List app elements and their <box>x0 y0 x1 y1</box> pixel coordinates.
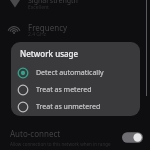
staticText: Allow connection to this network when in… <box>10 141 111 147</box>
button[interactable]: Treat as unmetered <box>11 98 140 115</box>
staticText: Signal strength <box>28 0 78 6</box>
staticText: Treat as metered <box>36 85 92 95</box>
button[interactable]: Auto-connect <box>0 124 150 150</box>
staticText: Treat as unmetered <box>36 102 101 112</box>
staticText: 2.4 GHz <box>28 31 47 38</box>
staticText: Frequency <box>28 22 68 33</box>
staticText: Auto-connect <box>10 128 61 139</box>
staticText: Excellent <box>28 4 49 11</box>
button[interactable]: Signal strength <box>0 0 150 20</box>
button[interactable]: Treat as metered <box>11 81 140 98</box>
staticText: Detect automatically <box>36 68 104 78</box>
staticText: Network usage <box>20 48 79 59</box>
button[interactable]: Frequency <box>0 21 150 41</box>
button[interactable]: Detect automatically <box>11 64 140 81</box>
button[interactable]: Auto-connect toggle <box>122 131 143 144</box>
